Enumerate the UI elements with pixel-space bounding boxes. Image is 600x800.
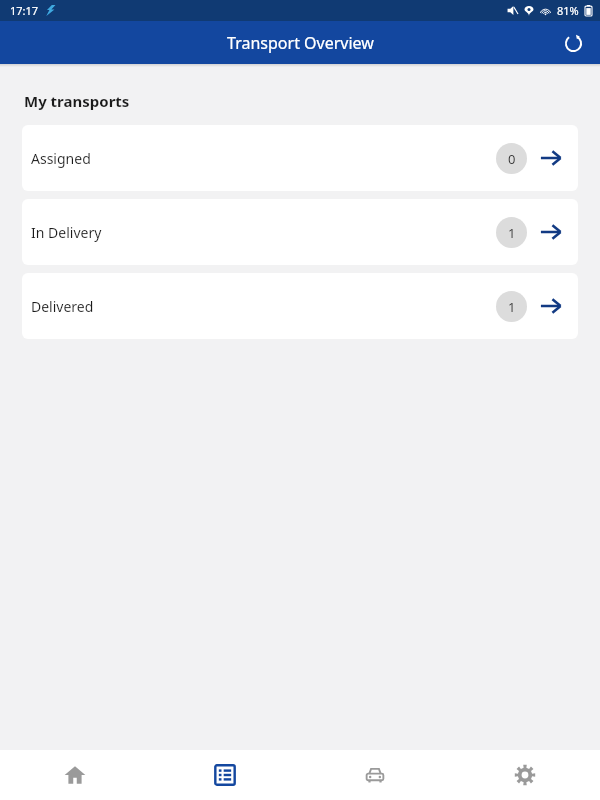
other: Open In Delivery — [539, 220, 563, 244]
staticText: Delivered — [31, 297, 496, 316]
button[interactable]: In Delivery — [22, 199, 578, 265]
staticText: 1 — [508, 224, 516, 242]
button[interactable]: Assigned — [22, 125, 578, 191]
staticText: 1 — [508, 298, 516, 316]
staticText: 17:17 — [10, 3, 39, 18]
staticText: Assigned — [31, 149, 496, 168]
button[interactable]: Home — [0, 750, 150, 800]
other: Open Assigned — [539, 146, 563, 170]
other: Open Delivered — [539, 294, 563, 318]
button[interactable]: Vehicles — [300, 750, 450, 800]
button[interactable]: Delivered — [22, 273, 578, 339]
staticText: 0 — [508, 150, 516, 168]
staticText: In Delivery — [31, 223, 496, 242]
button[interactable]: Settings — [450, 750, 600, 800]
staticText: 81% — [557, 3, 579, 18]
staticText: Transport Overview — [227, 32, 374, 54]
staticText: My transports — [24, 91, 130, 111]
button[interactable]: Transports — [150, 750, 300, 800]
button[interactable]: Refresh — [556, 26, 590, 60]
